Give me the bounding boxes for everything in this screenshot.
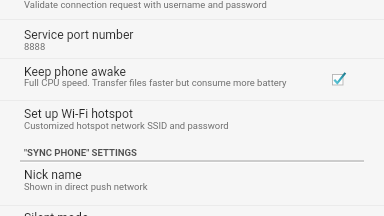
staticText: Set up Wi-Fi hotspot — [24, 107, 133, 121]
staticText: "SYNC PHONE" SETTINGS — [24, 147, 137, 158]
staticText: Full CPU speed. Transfer files faster bu… — [24, 77, 287, 88]
staticText: Nick name — [24, 168, 82, 182]
button[interactable]: Silent mode — [0, 206, 384, 216]
button[interactable]: Service port number — [0, 20, 384, 58]
staticText: Service port number — [24, 28, 134, 42]
staticText: Shown in direct push network — [24, 181, 148, 192]
button[interactable]: Nick name — [0, 161, 384, 205]
staticText: Customized hotspot network SSID and pass… — [24, 120, 229, 131]
staticText: Silent mode — [24, 211, 89, 216]
staticText: 8888 — [24, 41, 46, 52]
button[interactable]: Set up Wi-Fi hotspot — [0, 101, 384, 140]
button[interactable]: Keep phone awake — [0, 59, 384, 100]
other: Keep phone awake — [330, 70, 348, 88]
button[interactable]: Validate connection request with usernam… — [0, 0, 384, 18]
staticText: Keep phone awake — [24, 65, 126, 79]
staticText: Validate connection request with usernam… — [24, 0, 267, 10]
